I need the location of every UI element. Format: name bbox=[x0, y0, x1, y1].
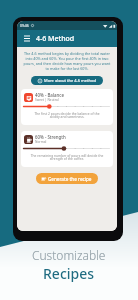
staticText: Recipes bbox=[43, 264, 95, 283]
staticText: The remaining number of pours will decid… bbox=[21, 153, 113, 161]
button[interactable]: Menu bbox=[22, 34, 31, 43]
staticText: Sweet | Neutral bbox=[35, 98, 59, 102]
staticText: The 4-6 method begins by dividing the to… bbox=[21, 51, 113, 71]
button[interactable]: Generate the recipe bbox=[36, 173, 98, 184]
staticText: 40% - Balance bbox=[35, 92, 64, 98]
staticText: 4-6 Method bbox=[36, 34, 75, 44]
staticText: More about the 4-6 method bbox=[44, 78, 96, 83]
staticText: The first 2 pours decide the balance of … bbox=[21, 111, 113, 119]
staticText: Normal bbox=[35, 140, 47, 144]
staticText: 60% - Strength bbox=[35, 134, 66, 140]
staticText: Customizable bbox=[32, 247, 106, 263]
button[interactable]: More about the 4-6 method bbox=[31, 76, 103, 85]
button[interactable]: 40% - Balance bbox=[21, 89, 113, 125]
staticText: 09:46 bbox=[20, 23, 29, 28]
staticText: Generate the recipe bbox=[48, 176, 92, 182]
button[interactable]: 60% - Strength bbox=[21, 131, 113, 167]
